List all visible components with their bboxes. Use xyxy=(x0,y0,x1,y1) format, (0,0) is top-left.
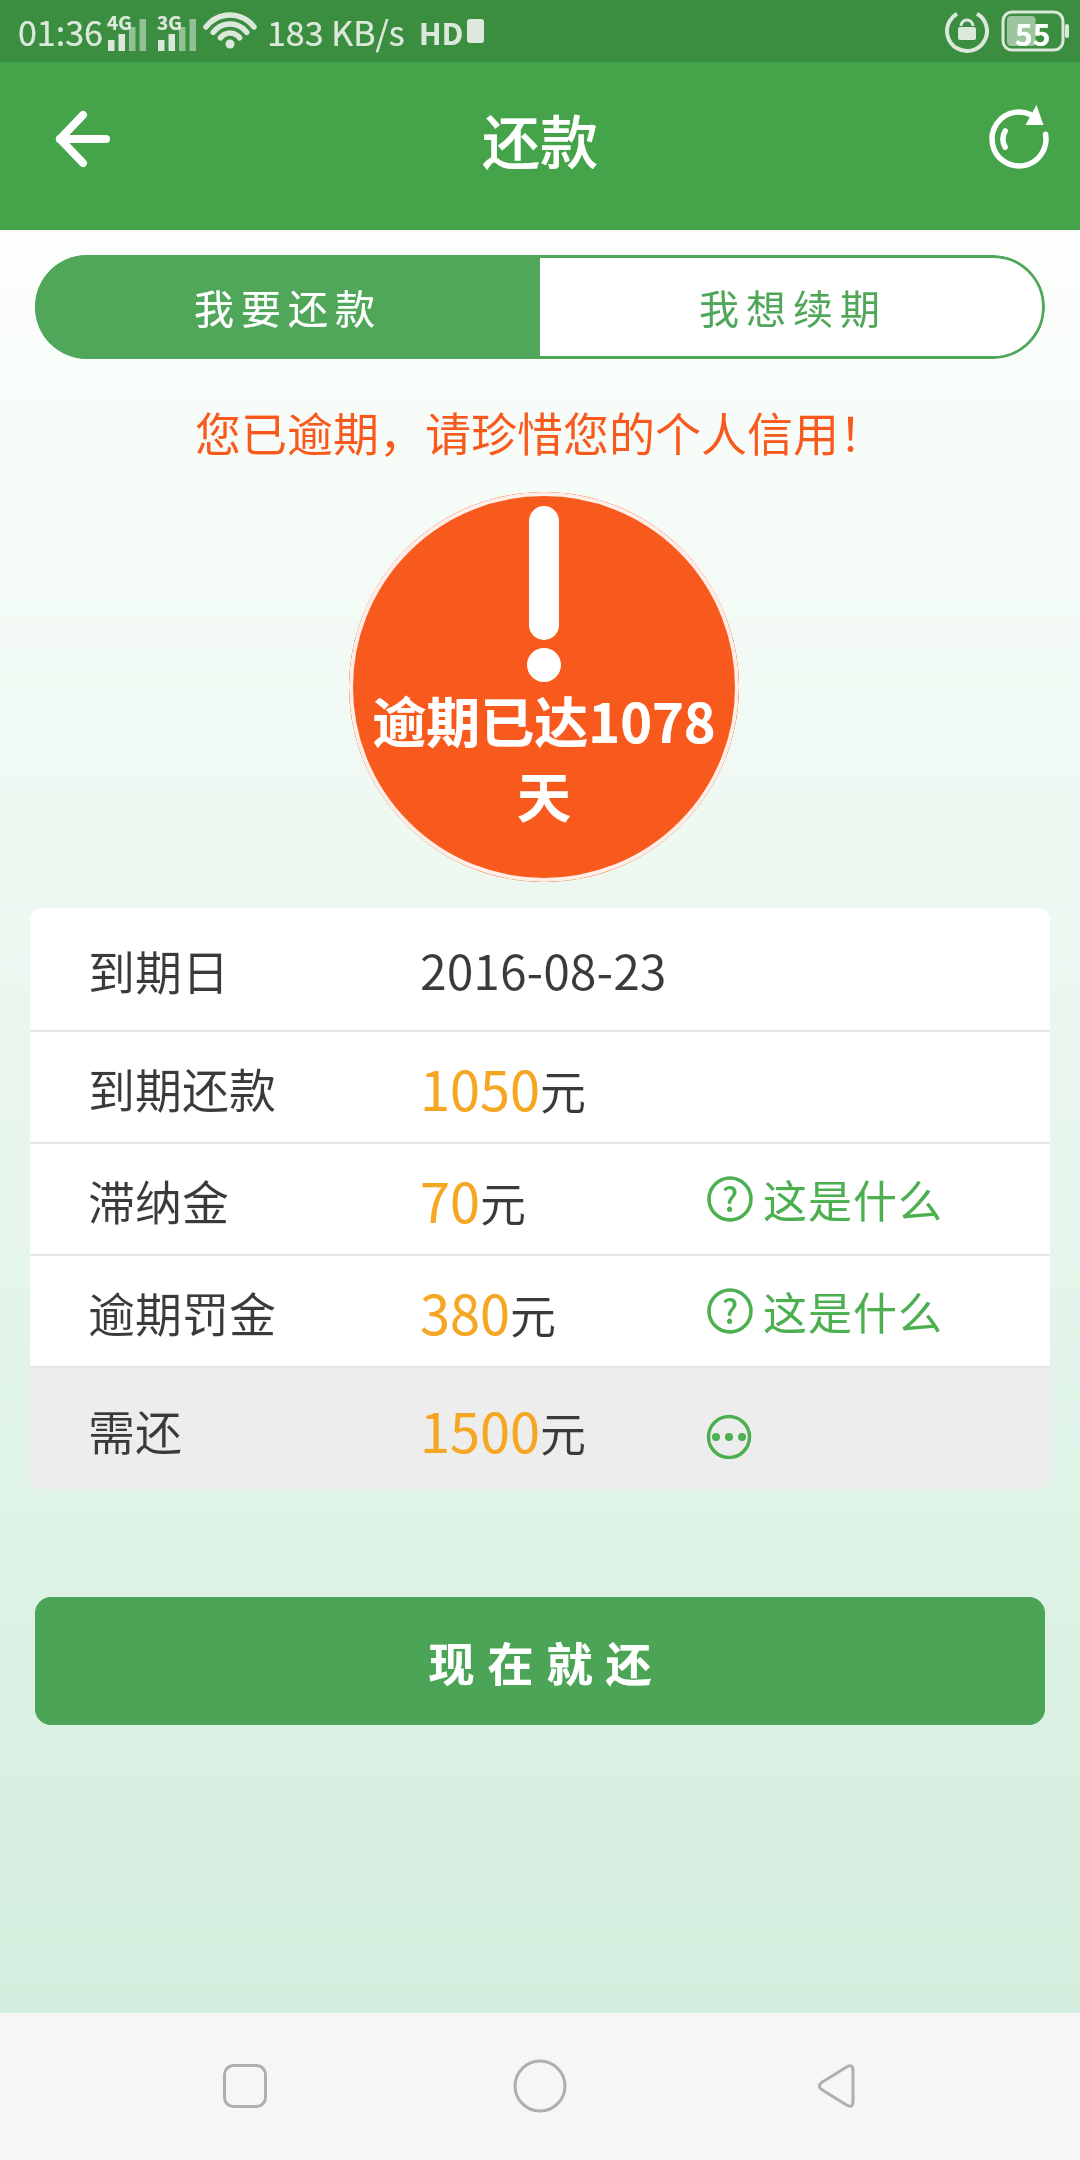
button[interactable]: 我想续期 xyxy=(540,255,1045,359)
button[interactable] xyxy=(984,104,1054,174)
staticText: 2016-08-23 xyxy=(420,934,667,1004)
button[interactable]: 现在就还 xyxy=(35,1597,1045,1725)
staticText: 我要还款 xyxy=(194,278,382,336)
staticText: 1050 xyxy=(420,1048,540,1126)
staticText: ? xyxy=(722,1174,739,1222)
button[interactable]: ? xyxy=(705,1279,943,1343)
button[interactable] xyxy=(205,2046,285,2126)
staticText: 滞纳金 xyxy=(88,1165,229,1233)
staticText: 183 KB/s xyxy=(267,7,405,56)
staticText: HD xyxy=(419,10,464,53)
staticText: 380 xyxy=(420,1272,510,1350)
staticText: 3G xyxy=(157,8,182,36)
staticText: 元 xyxy=(540,1056,586,1123)
staticText: 这是什么 xyxy=(763,1167,943,1231)
staticText: 元 xyxy=(480,1168,526,1235)
staticText: 1500 xyxy=(420,1390,540,1468)
staticText: 还款 xyxy=(482,97,599,181)
staticText: 现在就还 xyxy=(422,1628,658,1695)
staticText: 我想续期 xyxy=(699,278,887,336)
staticText: 元 xyxy=(510,1280,556,1347)
staticText: ? xyxy=(722,1286,739,1334)
staticText: 55 xyxy=(1015,11,1051,51)
staticText: 到期还款 xyxy=(88,1053,276,1121)
staticText: 到期日 xyxy=(88,935,229,1003)
staticText: 逾期已达1078 xyxy=(349,680,739,758)
button[interactable] xyxy=(705,1413,753,1461)
staticText: 01:36 xyxy=(18,7,103,56)
button[interactable] xyxy=(500,2046,580,2126)
staticText: 元 xyxy=(540,1398,586,1465)
staticText: 需还 xyxy=(88,1395,182,1463)
staticText: 4G xyxy=(107,8,132,36)
button[interactable]: ? xyxy=(705,1167,943,1231)
staticText: 这是什么 xyxy=(763,1279,943,1343)
staticText: 天 xyxy=(349,755,739,833)
staticText: 您已逾期，请珍惜您的个人信用！ xyxy=(0,398,1080,465)
staticText: 70 xyxy=(420,1160,480,1238)
button[interactable] xyxy=(44,99,124,179)
button[interactable] xyxy=(795,2046,875,2126)
button[interactable]: 我要还款 xyxy=(35,255,540,359)
staticText: 逾期罚金 xyxy=(88,1277,276,1345)
